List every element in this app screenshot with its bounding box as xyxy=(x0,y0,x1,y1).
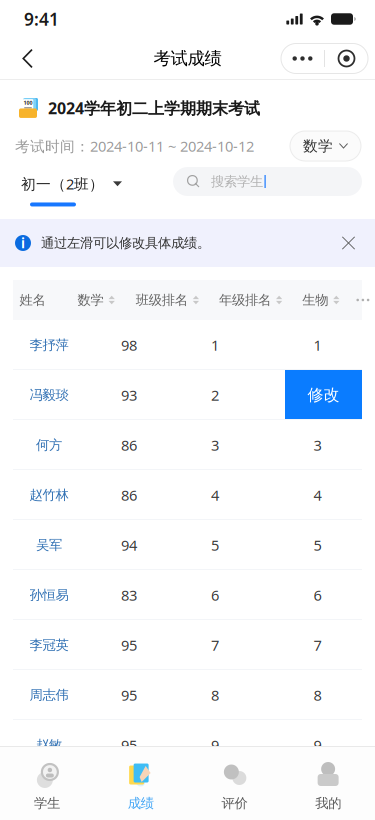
staticText: 姓名 xyxy=(20,292,46,308)
staticText: 考试成绩 xyxy=(153,48,221,69)
staticText: 修改 xyxy=(307,385,339,405)
button[interactable]: 年级排名 xyxy=(199,280,282,320)
staticText: 86 xyxy=(121,435,137,455)
staticText: 2 xyxy=(211,385,219,405)
staticText: 搜索学生 xyxy=(211,173,263,190)
button[interactable]: Back xyxy=(0,38,51,79)
staticText: 学生 xyxy=(34,795,60,811)
staticText: 93 xyxy=(121,385,137,405)
button[interactable]: 数学 xyxy=(46,280,115,320)
staticText: 赵敏 xyxy=(36,737,62,753)
button[interactable]: 班级排名 xyxy=(115,280,199,320)
button[interactable]: 数学 xyxy=(290,131,361,161)
staticText: 4 xyxy=(211,485,219,505)
staticText: 95 xyxy=(121,635,137,655)
button[interactable]: 搜索学生 xyxy=(173,167,362,196)
button[interactable]: 初一（2班） xyxy=(0,166,142,219)
staticText: 83 xyxy=(121,585,137,605)
staticText: 4 xyxy=(313,485,321,505)
staticText: 86 xyxy=(121,485,137,505)
staticText: 评价 xyxy=(221,795,247,811)
staticText: 95 xyxy=(121,735,137,755)
staticText: 8 xyxy=(313,685,321,705)
button[interactable]: Close mini program xyxy=(325,43,368,73)
staticText: 李冠英 xyxy=(29,637,68,653)
button[interactable]: More columns xyxy=(339,280,375,320)
staticText: 我的 xyxy=(315,795,341,811)
button[interactable]: 我的 xyxy=(281,747,375,820)
staticText: 通过左滑可以修改具体成绩。 xyxy=(41,235,210,251)
staticText: 9:41 xyxy=(24,7,59,30)
staticText: 7 xyxy=(211,635,219,655)
staticText: 6 xyxy=(313,585,321,605)
staticText: 3 xyxy=(313,435,321,455)
staticText: 7 xyxy=(313,635,321,655)
staticText: 孙恒易 xyxy=(29,587,68,603)
staticText: 2024学年初二上学期期末考试 xyxy=(48,97,260,119)
staticText: 考试时间：2024-10-11 ~ 2024-10-12 xyxy=(15,136,254,156)
staticText: 95 xyxy=(121,685,137,705)
staticText: 周志伟 xyxy=(29,687,68,703)
staticText: 冯毅琰 xyxy=(29,387,68,403)
staticText: 班级排名 xyxy=(136,292,188,308)
staticText: 3 xyxy=(211,435,219,455)
staticText: 年级排名 xyxy=(219,292,271,308)
staticText: 吴军 xyxy=(36,537,62,553)
staticText: 9 xyxy=(211,735,219,755)
staticText: 初一（2班） xyxy=(21,174,104,193)
staticText: 李抒萍 xyxy=(29,337,68,353)
staticText: 6 xyxy=(211,585,219,605)
staticText: i xyxy=(21,234,25,252)
button[interactable]: 成绩 xyxy=(94,747,188,820)
staticText: 数学 xyxy=(303,137,333,155)
staticText: 5 xyxy=(211,535,219,555)
staticText: 赵竹林 xyxy=(29,487,68,503)
button[interactable]: 学生 xyxy=(0,747,94,820)
button[interactable]: Dismiss xyxy=(326,219,375,267)
staticText: 100 xyxy=(23,99,32,106)
staticText: 98 xyxy=(121,335,137,355)
staticText: 1 xyxy=(211,335,219,355)
staticText: 生物 xyxy=(302,292,328,308)
staticText: 8 xyxy=(211,685,219,705)
button[interactable]: More xyxy=(281,43,324,73)
button[interactable]: 评价 xyxy=(187,747,281,820)
staticText: 数学 xyxy=(78,292,104,308)
staticText: 成绩 xyxy=(128,795,154,811)
staticText: 1 xyxy=(313,335,321,355)
staticText: 5 xyxy=(313,535,321,555)
staticText: 9 xyxy=(313,735,321,755)
staticText: 何方 xyxy=(36,437,62,453)
button[interactable]: 生物 xyxy=(282,280,339,320)
staticText: 94 xyxy=(121,535,137,555)
button[interactable]: 修改 xyxy=(285,370,362,420)
